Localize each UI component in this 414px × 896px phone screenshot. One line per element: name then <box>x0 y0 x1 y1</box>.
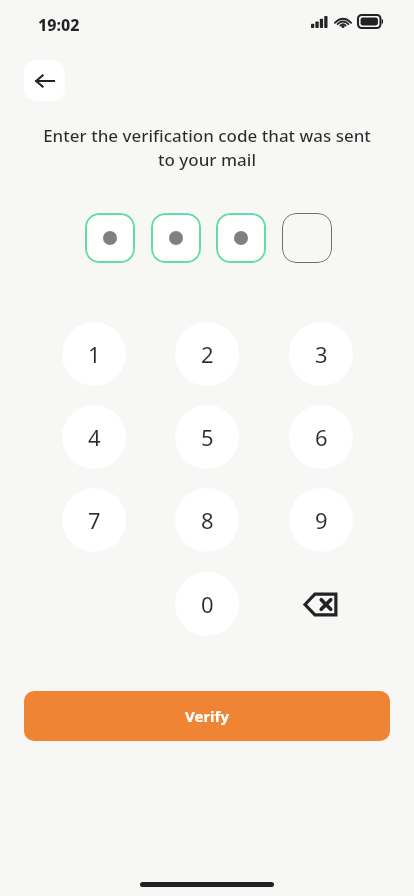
button[interactable]: Backspace <box>289 572 353 636</box>
staticText: 2 <box>201 339 214 369</box>
button[interactable]: 8 <box>175 488 239 552</box>
staticText: 7 <box>88 505 101 535</box>
button[interactable]: 1 <box>62 322 126 386</box>
staticText: 8 <box>201 505 214 535</box>
staticText: 9 <box>315 505 328 535</box>
button[interactable]: 9 <box>289 488 353 552</box>
button[interactable]: 7 <box>62 488 126 552</box>
staticText: 0 <box>201 589 214 619</box>
button[interactable]: 2 <box>175 322 239 386</box>
staticText: 1 <box>88 339 101 369</box>
button[interactable] <box>85 213 135 263</box>
button[interactable]: Verify <box>24 691 390 741</box>
staticText: 6 <box>315 422 328 452</box>
staticText: Enter the verification code that was sen… <box>40 124 374 171</box>
button[interactable]: 4 <box>62 405 126 469</box>
button[interactable] <box>151 213 201 263</box>
button[interactable] <box>216 213 266 263</box>
staticText: 19:02 <box>38 14 80 36</box>
button[interactable]: 0 <box>175 572 239 636</box>
button[interactable] <box>282 213 332 263</box>
button[interactable]: 3 <box>289 322 353 386</box>
staticText: 3 <box>315 339 328 369</box>
button[interactable]: 6 <box>289 405 353 469</box>
staticText: Verify <box>185 706 229 726</box>
button[interactable]: 5 <box>175 405 239 469</box>
staticText: 5 <box>201 422 214 452</box>
staticText: 4 <box>88 422 101 452</box>
button[interactable]: Back <box>24 60 65 101</box>
